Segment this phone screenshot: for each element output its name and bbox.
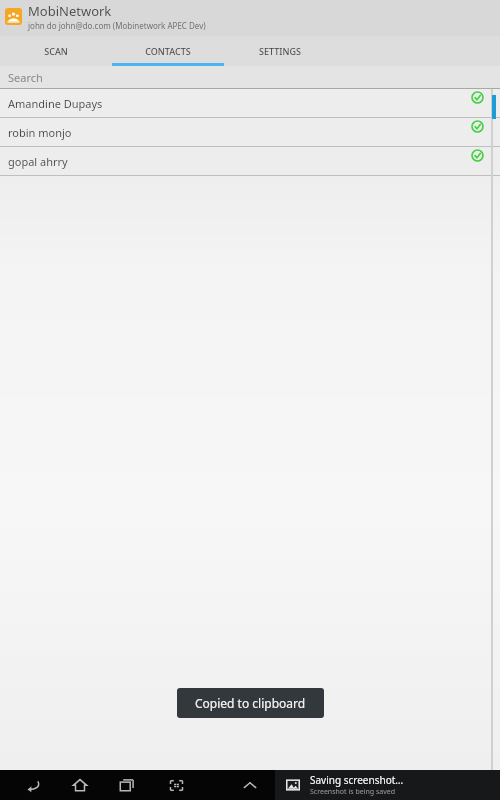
staticText: Screenshot is being saved <box>310 787 396 797</box>
staticText: CONTACTS <box>145 45 191 57</box>
staticText: Copied to clipboard <box>195 695 306 711</box>
button[interactable]: Screenshot <box>164 770 188 800</box>
other: Selected <box>471 91 484 104</box>
button[interactable]: Recents <box>115 770 139 800</box>
other: Selected <box>471 149 484 162</box>
staticText: Saving screenshot… <box>310 773 404 787</box>
staticText: Search <box>8 70 43 85</box>
button[interactable]: Home <box>68 770 92 800</box>
button[interactable]: Amandine Dupays <box>0 89 500 118</box>
button[interactable]: robin monjo <box>0 118 500 147</box>
staticText: SCAN <box>44 45 68 57</box>
button[interactable]: SCAN <box>0 36 112 66</box>
button[interactable]: SETTINGS <box>224 36 336 66</box>
staticText: SETTINGS <box>259 45 301 57</box>
button[interactable]: Saving screenshot… <box>275 770 500 800</box>
button[interactable]: Back <box>21 770 45 800</box>
button[interactable]: gopal ahrry <box>0 147 500 176</box>
button[interactable]: Show notifications <box>238 770 262 800</box>
staticText: john do john@do.com (Mobinetwork APEC De… <box>28 20 206 31</box>
staticText: Amandine Dupays <box>8 96 103 111</box>
staticText: gopal ahrry <box>8 154 68 169</box>
staticText: robin monjo <box>8 125 72 140</box>
button[interactable]: CONTACTS <box>112 36 224 66</box>
staticText: MobiNetwork <box>28 2 112 20</box>
other: Selected <box>471 120 484 133</box>
